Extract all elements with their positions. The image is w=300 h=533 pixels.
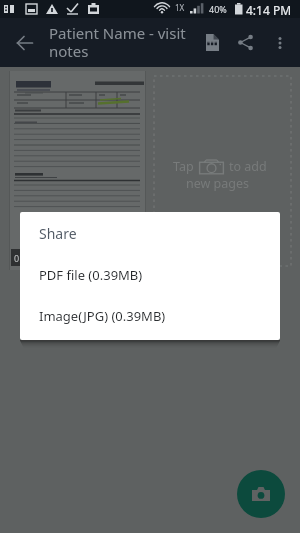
staticText: 40% [209, 3, 227, 15]
button[interactable]: Image(JPG) (0.39MB) [20, 295, 280, 336]
button[interactable]: Export as PDF [196, 18, 228, 67]
staticText: Share [39, 224, 77, 243]
staticText: PDF file (0.39MB) [39, 266, 143, 284]
staticText: to add [229, 158, 267, 175]
button[interactable]: PDF file (0.39MB) [20, 254, 280, 295]
staticText: Patient Name - visit notes [49, 23, 189, 61]
staticText: 0 [14, 252, 20, 264]
button[interactable]: 0 [9, 71, 146, 270]
staticText: new pages [186, 175, 250, 192]
button[interactable]: Take photo [237, 470, 285, 518]
button[interactable]: Tap [154, 76, 291, 266]
button[interactable]: Navigate up [6, 18, 44, 67]
staticText: Image(JPG) (0.39MB) [39, 307, 166, 325]
staticText: 1X [175, 2, 185, 13]
button[interactable]: More options [266, 18, 294, 67]
button[interactable]: Share [229, 18, 261, 67]
staticText: 4:14 PM [246, 2, 292, 18]
staticText: Tap [173, 158, 194, 175]
